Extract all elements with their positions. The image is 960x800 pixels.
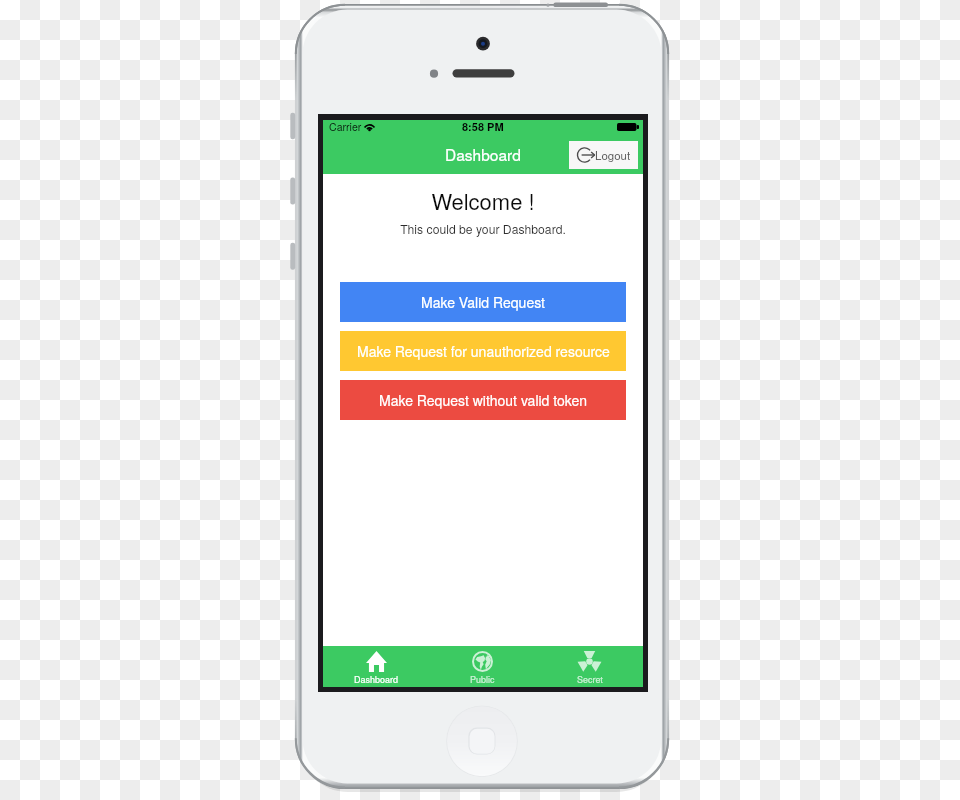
staticText: Make Request without valid token — [379, 390, 588, 410]
other: Secret — [579, 651, 600, 672]
staticText: 8:58 PM — [462, 119, 504, 135]
button[interactable]: Public — [429, 646, 536, 686]
button[interactable]: Logout — [569, 141, 638, 169]
button[interactable]: Dashboard — [323, 646, 429, 686]
staticText: Logout — [595, 147, 631, 163]
other: Dashboard — [366, 651, 387, 672]
staticText: Make Valid Request — [421, 292, 546, 312]
staticText: Carrier — [329, 119, 362, 134]
staticText: Make Request for unauthorized resource — [357, 341, 610, 361]
button[interactable]: Make Request for unauthorized resource — [340, 331, 626, 371]
staticText: Dashboard — [354, 673, 399, 686]
other: Public — [472, 651, 493, 672]
staticText: Public — [470, 673, 495, 686]
button[interactable]: Make Valid Request — [340, 282, 626, 322]
other: Logout — [577, 147, 594, 163]
staticText: Welcome ! — [323, 185, 643, 217]
button[interactable]: Make Request without valid token — [340, 380, 626, 420]
staticText: This could be your Dashboard. — [323, 220, 643, 237]
staticText: Dashboard — [445, 143, 521, 165]
staticText: Secret — [577, 673, 603, 686]
button[interactable]: Secret — [536, 646, 643, 686]
